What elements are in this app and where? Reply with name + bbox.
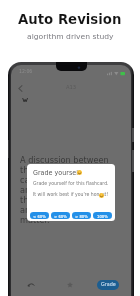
- button[interactable]: > 80%: [72, 212, 91, 219]
- staticText: 100%: [97, 214, 108, 218]
- staticText: A13: [66, 84, 77, 90]
- staticText: It will work best if you're honest!: [33, 192, 109, 197]
- staticText: > 80%: [75, 214, 88, 218]
- staticText: A discussion between: [20, 155, 109, 165]
- staticText: Grade yourself: [33, 169, 81, 176]
- staticText: < 60%: [33, 214, 46, 218]
- staticText: Grade: [101, 282, 116, 288]
- button[interactable]: Undo: [23, 277, 39, 293]
- staticText: 12:06: [19, 69, 33, 74]
- button[interactable]: Grade: [97, 280, 119, 290]
- staticText: candidate about the: [20, 175, 103, 185]
- button[interactable]: < 60%: [30, 212, 49, 219]
- staticText: Auto Revision: [18, 12, 122, 27]
- staticText: answers given, with: [20, 185, 102, 195]
- button[interactable]: 100%: [93, 212, 112, 219]
- button[interactable]: Favourite: [62, 277, 78, 293]
- staticText: matter.: [20, 215, 50, 225]
- staticText: algorithm driven study: [27, 32, 114, 41]
- button[interactable]: > 60%: [51, 212, 70, 219]
- staticText: answers that really: [20, 205, 99, 215]
- staticText: the aim of clarifying: [20, 195, 103, 205]
- staticText: > 60%: [54, 214, 67, 218]
- staticText: the examiner and the: [20, 165, 109, 175]
- staticText: Grade yourself for this flashcard.: [33, 181, 109, 186]
- button[interactable]: Back: [13, 81, 27, 95]
